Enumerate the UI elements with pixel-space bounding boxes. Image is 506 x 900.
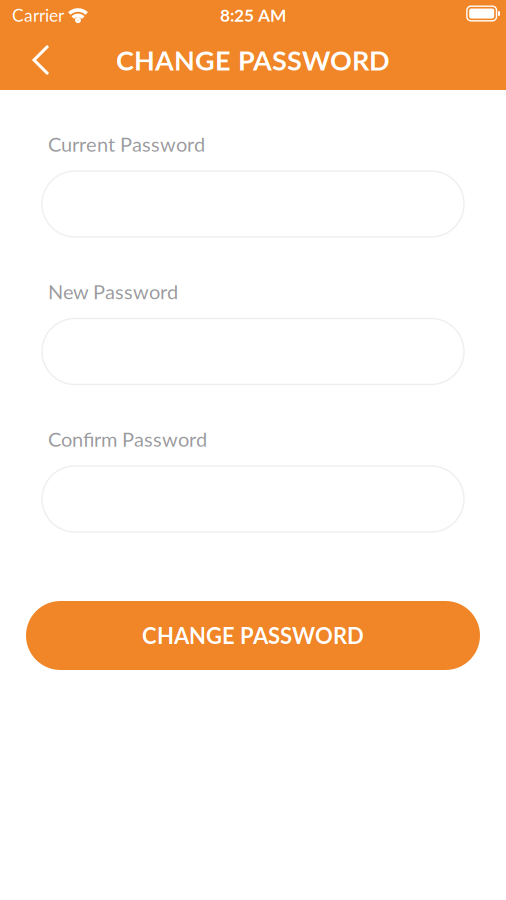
staticText: Confirm Password — [48, 427, 207, 451]
staticText: Current Password — [48, 132, 205, 156]
staticText: New Password — [48, 279, 178, 303]
button[interactable]: CHANGE PASSWORD — [26, 601, 480, 670]
staticText: CHANGE PASSWORD — [142, 622, 364, 649]
button[interactable]: Back — [0, 34, 70, 86]
staticText: 8:25 AM — [220, 5, 286, 25]
staticText: Carrier — [12, 5, 64, 25]
staticText: CHANGE PASSWORD — [116, 44, 390, 76]
